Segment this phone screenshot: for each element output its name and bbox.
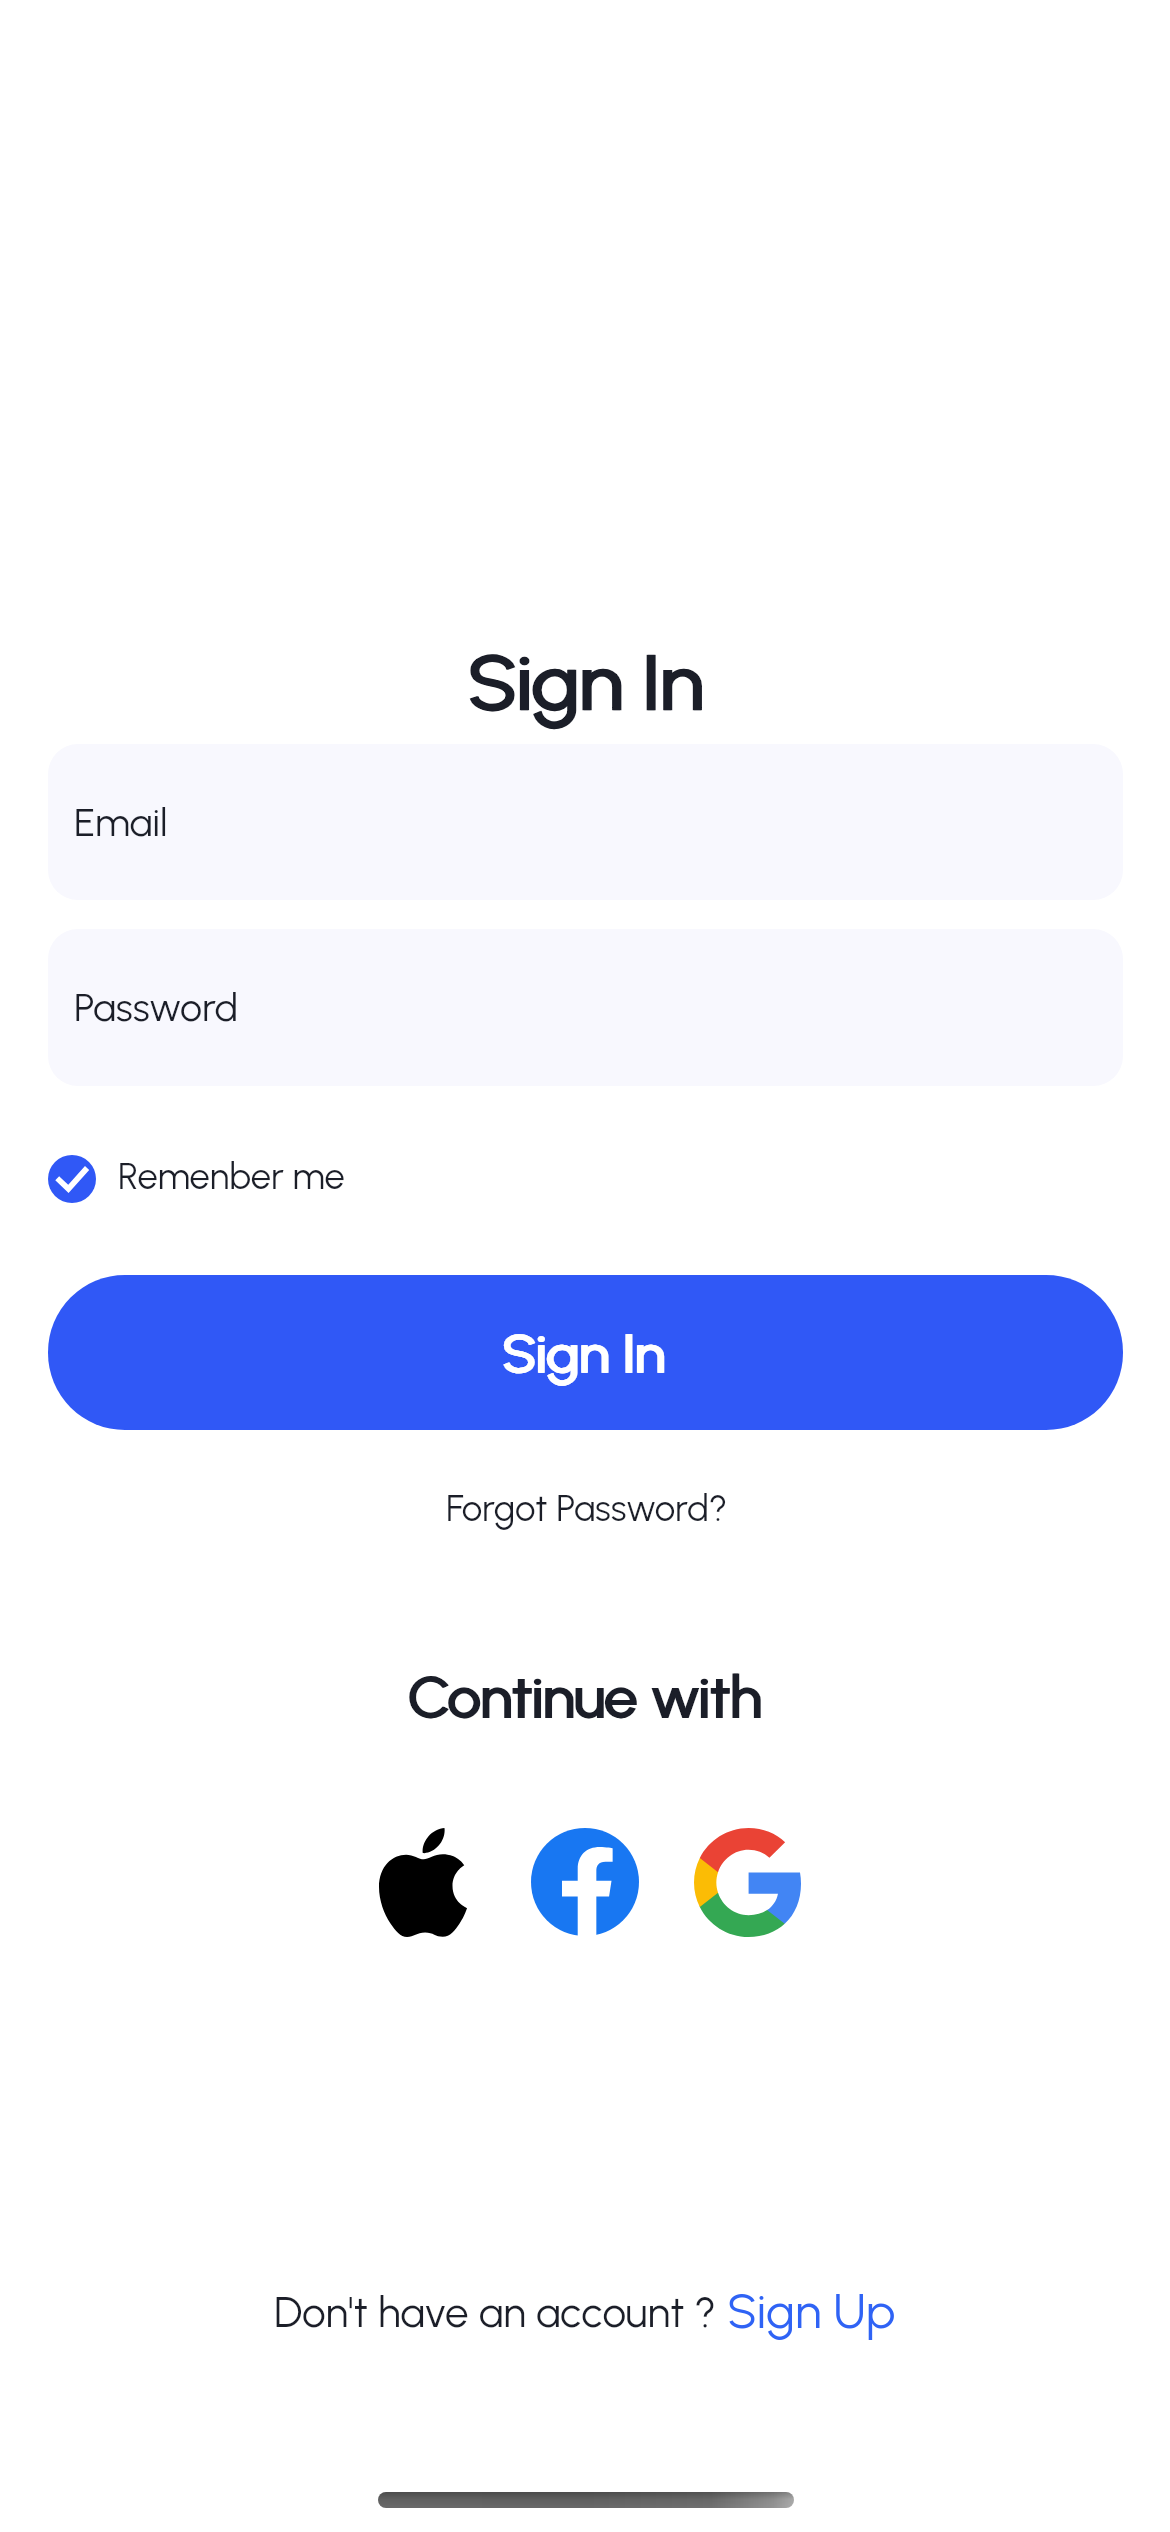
staticText: Sign In bbox=[502, 1322, 665, 1386]
staticText: Continue with bbox=[409, 1664, 762, 1732]
staticText: Remenber me bbox=[118, 1155, 345, 1199]
staticText: Email bbox=[74, 799, 168, 846]
button[interactable]: Continue with Facebook bbox=[504, 1819, 666, 1945]
button[interactable]: Forgot Password? bbox=[425, 1470, 745, 1542]
staticText: Sign In bbox=[467, 637, 704, 728]
button[interactable]: Email bbox=[48, 744, 1123, 900]
button[interactable]: Sign In bbox=[48, 1275, 1123, 1430]
staticText: Don't have an account ? bbox=[274, 2287, 716, 2338]
staticText: Password bbox=[74, 984, 239, 1031]
button[interactable]: Continue with Apple bbox=[342, 1819, 504, 1945]
button[interactable]: Continue with Google bbox=[666, 1819, 828, 1945]
button[interactable]: Remenber me bbox=[48, 1147, 345, 1207]
staticText: Continue with bbox=[408, 1664, 761, 1732]
button[interactable]: Sign Up bbox=[727, 2281, 896, 2340]
staticText: Forgot Password? bbox=[446, 1486, 728, 1530]
staticText: Sign In bbox=[468, 637, 705, 728]
button[interactable]: Password bbox=[48, 929, 1123, 1086]
staticText: Sign In bbox=[503, 1322, 666, 1386]
